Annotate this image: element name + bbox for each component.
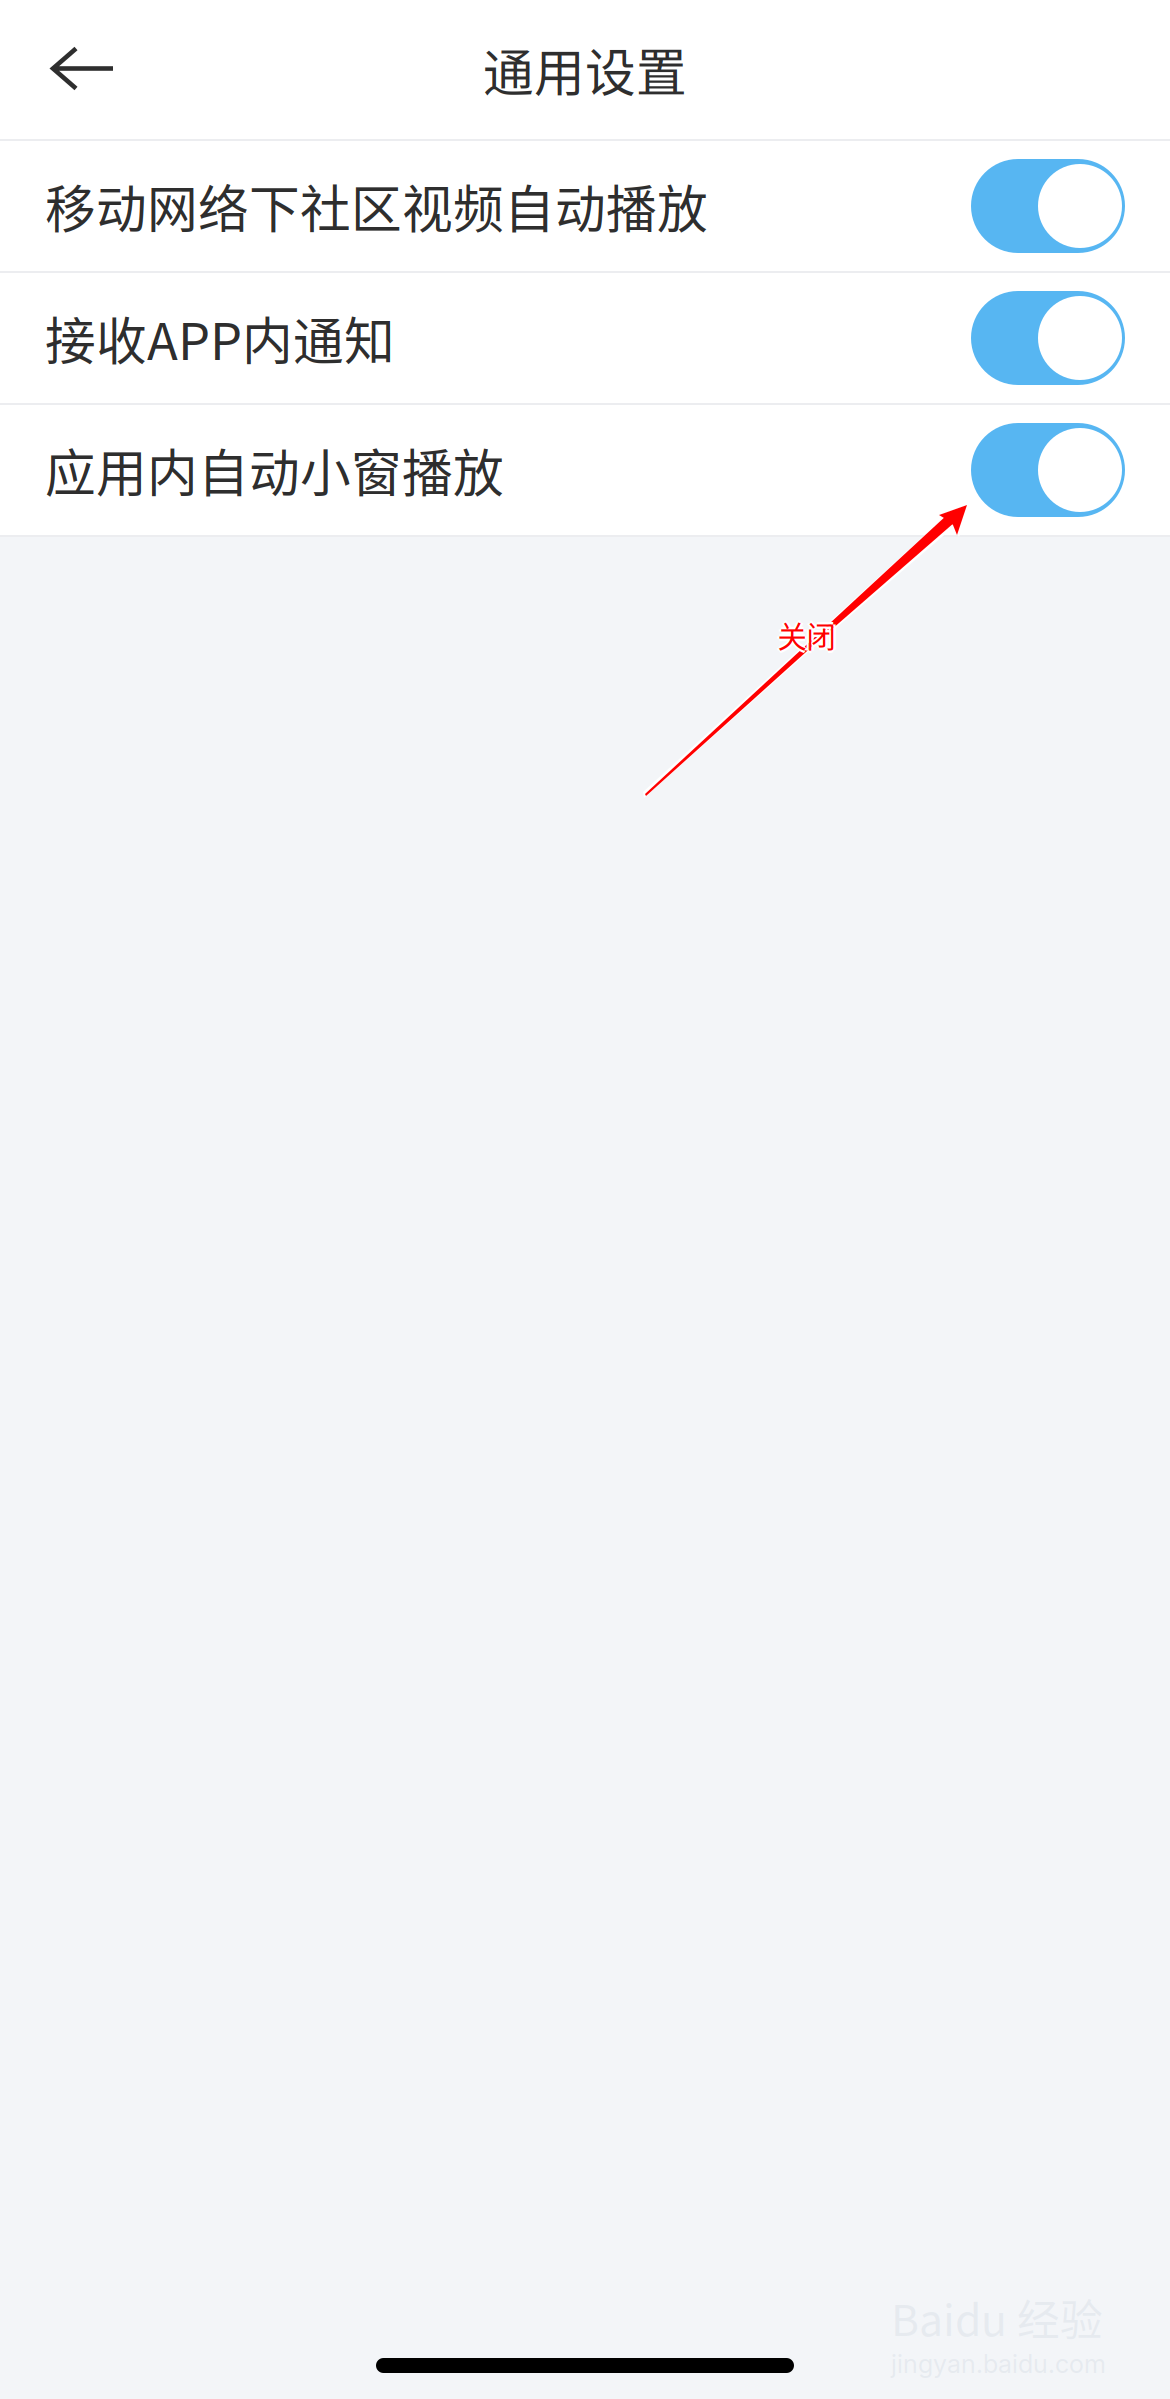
staticText: 关闭	[777, 616, 835, 658]
staticText: 关闭	[775, 613, 833, 656]
staticText: 关闭	[777, 613, 835, 656]
staticText: 关闭	[777, 611, 835, 653]
staticText: 应用内自动小窗播放	[45, 433, 504, 507]
staticText: 通用设置	[483, 33, 687, 106]
staticText: jingyan.baidu.com	[891, 2348, 1106, 2379]
staticText: 关闭	[780, 613, 838, 656]
button[interactable]: Back	[0, 0, 180, 139]
staticText: Baidu 经验	[891, 2287, 1103, 2348]
button[interactable]: 移动网络下社区视频自动播放	[0, 141, 1170, 271]
staticText: 接收APP内通知	[45, 301, 395, 375]
button[interactable]: 应用内自动小窗播放	[0, 405, 1170, 535]
staticText: 移动网络下社区视频自动播放	[45, 169, 708, 243]
button[interactable]: 接收APP内通知	[0, 273, 1170, 403]
